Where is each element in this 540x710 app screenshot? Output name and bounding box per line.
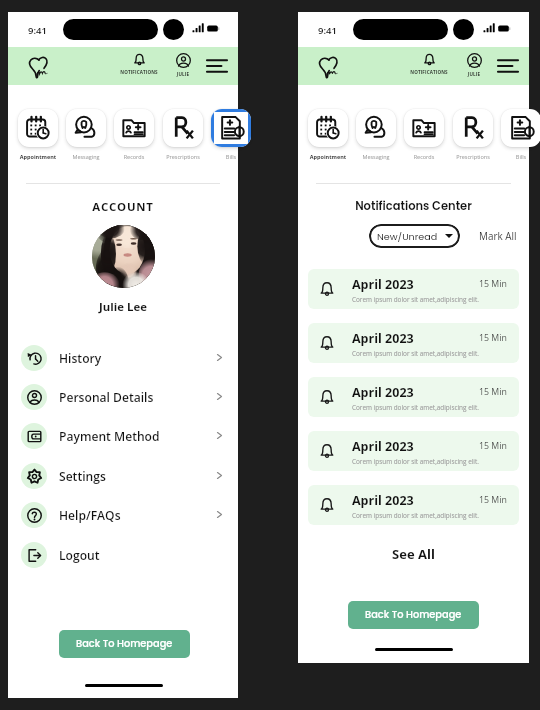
- button[interactable]: April 2023: [308, 377, 519, 417]
- button[interactable]: New/Unread: [369, 224, 460, 248]
- staticText: Bills: [207, 153, 255, 160]
- button[interactable]: Appointment: [304, 98, 352, 160]
- button[interactable]: Mark All: [479, 229, 517, 242]
- staticText: April 2023: [352, 492, 414, 509]
- button[interactable]: Back To Homepage: [348, 601, 479, 629]
- button[interactable]: April 2023: [308, 431, 519, 471]
- staticText: 15 Min: [479, 440, 507, 452]
- button[interactable]: Back To Homepage: [59, 630, 190, 658]
- button[interactable]: Messaging: [352, 98, 400, 160]
- button[interactable]: NOTIFICATIONS: [404, 53, 454, 75]
- staticText: 9:41: [28, 24, 47, 37]
- staticText: Corem ipsum dolor sit amet,adipiscing el…: [352, 295, 479, 304]
- staticText: JULIE: [166, 71, 200, 77]
- staticText: NOTIFICATIONS: [404, 69, 454, 75]
- staticText: Appointment: [304, 153, 352, 160]
- button[interactable]: Prescriptions: [449, 98, 497, 160]
- button[interactable]: Logout: [8, 535, 238, 574]
- button[interactable]: April 2023: [308, 485, 519, 525]
- staticText: April 2023: [352, 438, 414, 455]
- staticText: Personal Details: [59, 389, 154, 405]
- staticText: History: [59, 350, 102, 366]
- staticText: Payment Method: [59, 428, 160, 444]
- other: Dental logo: [318, 55, 338, 78]
- button[interactable]: April 2023: [308, 269, 519, 309]
- staticText: Records: [400, 153, 448, 160]
- staticText: April 2023: [352, 330, 414, 347]
- button[interactable]: See All: [298, 545, 529, 563]
- staticText: 15 Min: [479, 494, 507, 506]
- staticText: Prescriptions: [449, 153, 497, 160]
- button[interactable]: Menu: [203, 55, 231, 77]
- staticText: ACCOUNT: [8, 199, 238, 215]
- button[interactable]: April 2023: [308, 323, 519, 363]
- staticText: Appointment: [14, 153, 62, 160]
- button[interactable]: Payment Method: [8, 416, 238, 455]
- staticText: Mark All: [479, 229, 517, 242]
- staticText: Messaging: [352, 153, 400, 160]
- button[interactable]: Prescriptions: [159, 98, 207, 160]
- staticText: JULIE: [457, 71, 491, 77]
- staticText: Corem ipsum dolor sit amet,adipiscing el…: [352, 403, 479, 412]
- button[interactable]: NOTIFICATIONS: [114, 53, 164, 75]
- button[interactable]: JULIE: [457, 53, 491, 77]
- staticText: Prescriptions: [159, 153, 207, 160]
- staticText: Back To Homepage: [365, 608, 462, 622]
- staticText: New/Unread: [377, 230, 438, 243]
- button[interactable]: Bills: [497, 98, 540, 160]
- button[interactable]: Records: [110, 98, 158, 160]
- staticText: Bills: [497, 153, 540, 160]
- button[interactable]: Personal Details: [8, 377, 238, 416]
- staticText: Corem ipsum dolor sit amet,adipiscing el…: [352, 511, 479, 520]
- button[interactable]: JULIE: [166, 53, 200, 77]
- staticText: Corem ipsum dolor sit amet,adipiscing el…: [352, 349, 479, 358]
- button[interactable]: Settings: [8, 456, 238, 495]
- staticText: Help/FAQs: [59, 507, 121, 523]
- staticText: April 2023: [352, 276, 414, 293]
- staticText: 15 Min: [479, 332, 507, 344]
- staticText: 15 Min: [479, 386, 507, 398]
- staticText: Notifications Center: [298, 198, 529, 214]
- staticText: Settings: [59, 468, 106, 484]
- staticText: Records: [110, 153, 158, 160]
- staticText: Logout: [59, 547, 100, 563]
- staticText: Corem ipsum dolor sit amet,adipiscing el…: [352, 457, 479, 466]
- button[interactable]: Appointment: [14, 98, 62, 160]
- staticText: Messaging: [62, 153, 110, 160]
- staticText: NOTIFICATIONS: [114, 69, 164, 75]
- staticText: 15 Min: [479, 278, 507, 290]
- button[interactable]: Bills: [207, 98, 255, 160]
- button[interactable]: Help/FAQs: [8, 495, 238, 534]
- button[interactable]: Messaging: [62, 98, 110, 160]
- button[interactable]: Records: [400, 98, 448, 160]
- staticText: 9:41: [318, 24, 337, 37]
- other: Dental logo: [28, 55, 48, 78]
- button[interactable]: History: [8, 338, 238, 377]
- button[interactable]: Menu: [494, 55, 522, 77]
- staticText: April 2023: [352, 384, 414, 401]
- staticText: Back To Homepage: [76, 637, 173, 651]
- staticText: Julie Lee: [8, 299, 238, 315]
